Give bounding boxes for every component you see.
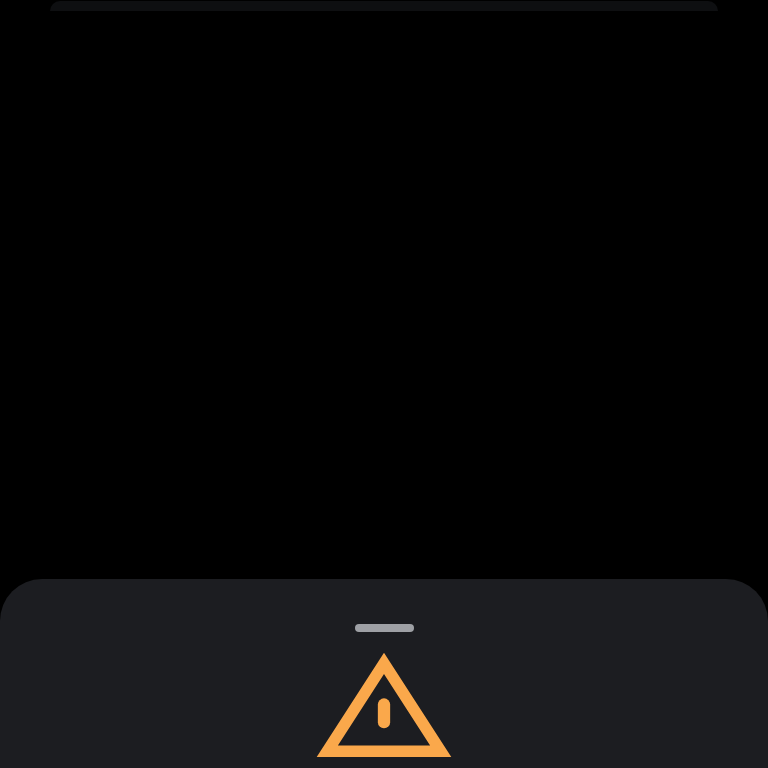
button[interactable]: Drag handle [355,624,414,632]
other: Warning [319,657,449,767]
button[interactable]: Drag handle [0,579,768,768]
